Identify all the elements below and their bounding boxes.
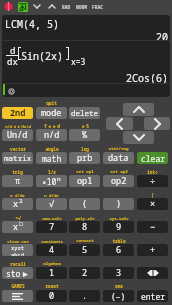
staticText: stat/reg bbox=[108, 146, 129, 152]
button[interactable]: Scroll down bbox=[31, 0, 43, 13]
staticText: 2 bbox=[19, 198, 23, 205]
button[interactable]: (−) bbox=[103, 290, 134, 302]
button[interactable]: 3 bbox=[103, 267, 134, 279]
button[interactable]: math bbox=[36, 152, 67, 164]
button[interactable]: data bbox=[103, 152, 134, 164]
staticText: ▪10 bbox=[42, 176, 57, 187]
staticText: . bbox=[82, 290, 88, 302]
staticText: math bbox=[42, 153, 62, 164]
staticText: dx bbox=[7, 55, 18, 67]
staticText: n/d bbox=[44, 129, 60, 141]
staticText: x bbox=[13, 221, 19, 233]
staticText: n bbox=[57, 175, 61, 183]
button[interactable]: + bbox=[137, 244, 168, 256]
button[interactable]: √ bbox=[36, 198, 67, 210]
button[interactable]: 1 bbox=[36, 267, 67, 279]
staticText: 1/x bbox=[48, 169, 56, 175]
button[interactable]: 9 bbox=[103, 221, 134, 233]
button[interactable]: op2 bbox=[103, 175, 134, 187]
button[interactable]: 2nd bbox=[2, 107, 33, 119]
staticText: ÷ bbox=[150, 175, 156, 187]
staticText: 3 bbox=[116, 267, 122, 279]
button[interactable]: ÷ bbox=[137, 175, 168, 187]
staticText: op1 bbox=[77, 175, 93, 187]
button[interactable]: π bbox=[2, 175, 33, 187]
staticText: abcd bbox=[11, 251, 24, 256]
staticText: Sin(2x) bbox=[21, 49, 63, 63]
staticText: constants bbox=[41, 239, 63, 244]
button[interactable]: prb bbox=[69, 152, 100, 164]
staticText: 2 bbox=[82, 267, 88, 279]
staticText: x bbox=[13, 198, 19, 210]
staticText: Un/d bbox=[7, 129, 28, 141]
staticText: enter bbox=[141, 291, 165, 302]
staticText: prb bbox=[77, 152, 93, 164]
staticText: − bbox=[150, 221, 156, 233]
button[interactable] bbox=[2, 290, 33, 302]
staticText: int÷ bbox=[147, 169, 158, 175]
staticText: ans bbox=[115, 283, 123, 289]
staticText: 5 bbox=[82, 244, 88, 256]
button[interactable]: n/d bbox=[36, 129, 67, 141]
button[interactable]: delete bbox=[69, 107, 100, 119]
button[interactable]: ▪10 bbox=[36, 175, 67, 187]
staticText: ⁿ√ bbox=[15, 215, 21, 221]
staticText: poly-slv bbox=[75, 216, 95, 221]
staticText: □ bbox=[19, 221, 23, 228]
staticText: RAD bbox=[62, 4, 71, 10]
button[interactable]: xyzt bbox=[2, 244, 33, 256]
staticText: matrix bbox=[4, 153, 32, 163]
button[interactable]: . bbox=[69, 290, 100, 302]
button[interactable]: × bbox=[137, 198, 168, 210]
staticText: √ bbox=[49, 198, 55, 210]
button[interactable]: Scroll up bbox=[46, 0, 58, 13]
button[interactable]: sto▶ bbox=[2, 267, 33, 279]
button[interactable]: 7 bbox=[36, 221, 67, 233]
staticText: sys-solv bbox=[109, 216, 129, 221]
button[interactable]: mode bbox=[36, 107, 67, 119]
button[interactable]: − bbox=[137, 221, 168, 233]
staticText: recall bbox=[10, 261, 26, 267]
button[interactable]: Right bbox=[144, 117, 170, 130]
staticText: delete bbox=[71, 108, 98, 118]
staticText: convert bbox=[76, 238, 94, 244]
button[interactable]: Up bbox=[123, 103, 154, 116]
staticText: angle bbox=[45, 146, 59, 152]
staticText: op2 bbox=[111, 175, 127, 187]
staticText: set op1 bbox=[76, 169, 94, 175]
button[interactable]: Calculator bbox=[3, 1, 13, 11]
button[interactable]: 8 bbox=[69, 221, 100, 233]
staticText: 8 bbox=[82, 221, 88, 233]
button[interactable] bbox=[137, 267, 168, 279]
button[interactable]: Un/d bbox=[2, 129, 33, 141]
button[interactable]: Graph bbox=[18, 2, 28, 12]
staticText: set op2 bbox=[110, 169, 128, 175]
staticText: x=3 bbox=[71, 56, 86, 67]
staticText: 1 bbox=[49, 267, 55, 279]
button[interactable]: clear bbox=[137, 152, 168, 164]
staticText: FRAC bbox=[92, 4, 104, 10]
button[interactable]: Left bbox=[106, 117, 133, 130]
button[interactable]: x bbox=[2, 221, 33, 233]
button[interactable]: 2 bbox=[69, 267, 100, 279]
button[interactable]: x bbox=[2, 198, 33, 210]
button[interactable]: 5 bbox=[69, 244, 100, 256]
staticText: log bbox=[81, 146, 89, 152]
button[interactable]: Down bbox=[123, 131, 154, 144]
button[interactable]: matrix bbox=[2, 152, 33, 164]
staticText: vector bbox=[10, 146, 26, 152]
staticText: (−) bbox=[111, 291, 126, 302]
button[interactable]: ( bbox=[69, 198, 100, 210]
button[interactable]: % bbox=[69, 129, 100, 141]
button[interactable]: 4 bbox=[36, 244, 67, 256]
staticText: quit bbox=[46, 100, 57, 106]
button[interactable]: enter bbox=[137, 290, 168, 302]
button[interactable]: op1 bbox=[69, 175, 100, 187]
staticText: 0 bbox=[49, 290, 55, 302]
staticText: n d/dx bbox=[44, 193, 59, 198]
staticText: reset bbox=[45, 283, 59, 289]
button[interactable]: 0 bbox=[36, 290, 67, 302]
staticText: 2Cos(6) bbox=[2, 71, 168, 85]
button[interactable]: 6 bbox=[103, 244, 134, 256]
button[interactable]: ) bbox=[103, 198, 134, 210]
